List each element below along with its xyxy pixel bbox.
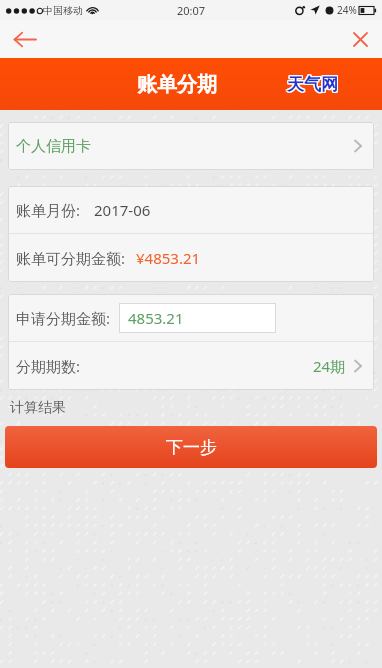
staticText: 天气网 [287, 75, 338, 96]
button[interactable]: 4853.21 [119, 303, 276, 333]
staticText: 账单可分期金额: [16, 248, 126, 268]
button[interactable]: 下一步 [5, 426, 377, 468]
staticText: 天气网 [288, 73, 339, 94]
staticText: 中国移动 [43, 4, 83, 17]
staticText: 20:07 [177, 3, 206, 18]
button[interactable]: 个人信用卡 [8, 122, 374, 170]
staticText: 天气网 [288, 74, 339, 95]
staticText: 分期期数: [16, 356, 81, 376]
button[interactable]: 分期期数: [8, 342, 374, 389]
staticText: 计算结果 [10, 399, 66, 417]
staticText: 24% [337, 3, 357, 17]
staticText: 4853.21 [128, 308, 184, 328]
staticText: 天气网 [288, 75, 339, 96]
staticText: ¥4853.21 [136, 248, 201, 268]
staticText: 账单月份: [16, 200, 81, 220]
staticText: 天气网 [287, 73, 338, 94]
button[interactable]: Close [338, 20, 382, 58]
staticText: 申请分期金额: [16, 308, 111, 328]
staticText: 账单分期 [137, 72, 217, 97]
staticText: 24期 [313, 356, 346, 376]
staticText: 天气网 [286, 75, 337, 96]
staticText: 个人信用卡 [16, 137, 91, 156]
staticText: 下一步 [166, 437, 217, 458]
staticText: 天气网 [287, 74, 338, 95]
staticText: 天气网 [286, 74, 337, 95]
staticText: 天气网 [286, 73, 337, 94]
staticText: 2017-06 [94, 200, 151, 220]
button[interactable]: Back [0, 20, 48, 58]
